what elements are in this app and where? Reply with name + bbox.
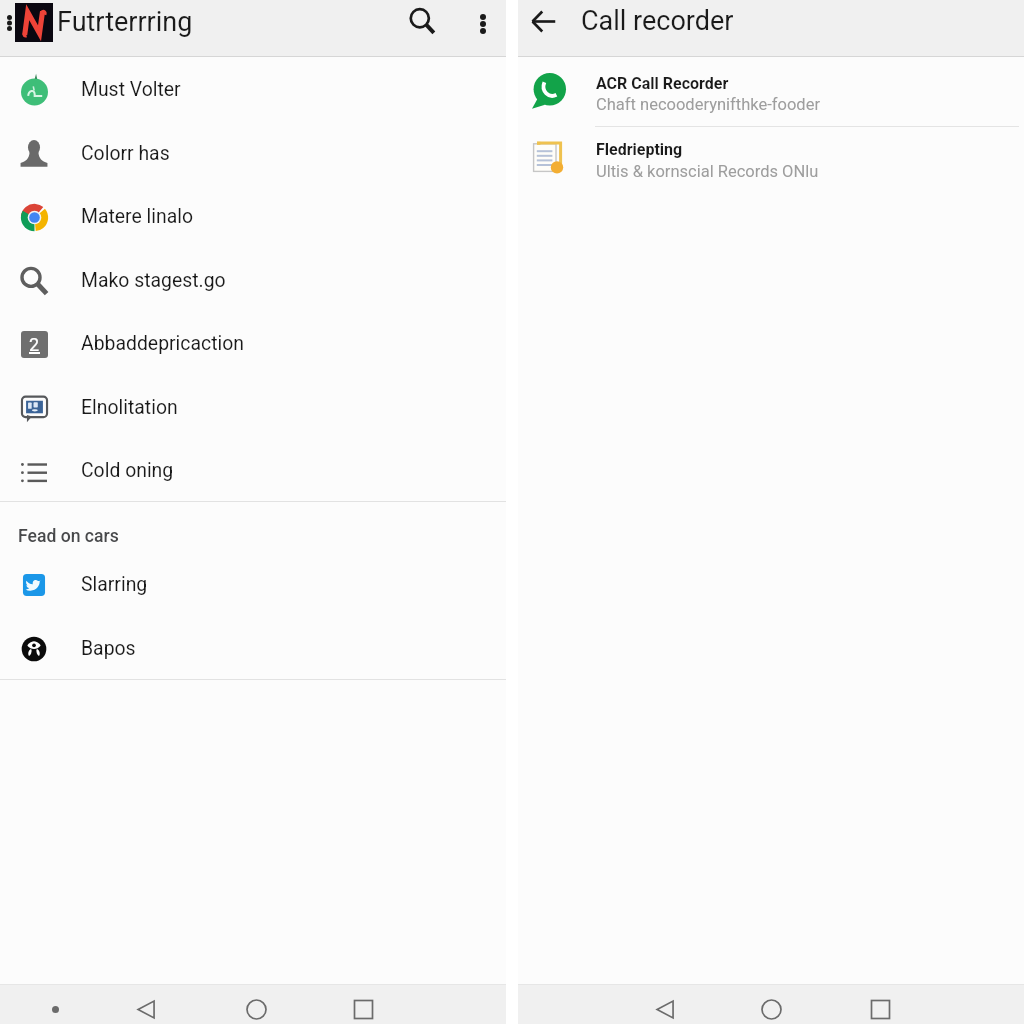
button[interactable]: Back <box>122 989 170 1024</box>
button[interactable]: Colorr has <box>0 122 506 185</box>
staticText: Slarring <box>81 573 148 596</box>
staticText: Mako stagest.go <box>81 269 226 292</box>
staticText: Futrterrring <box>57 6 193 38</box>
button[interactable]: ACR Call Recorder <box>518 54 1024 120</box>
staticText: Matere linalo <box>81 205 194 228</box>
button[interactable]: Matere linalo <box>0 185 506 248</box>
button[interactable]: Home <box>232 989 280 1024</box>
button[interactable]: Elnolitation <box>0 376 506 439</box>
button[interactable]: More options <box>459 0 507 48</box>
staticText: 2 <box>29 334 40 355</box>
button[interactable]: Bapos <box>0 617 506 680</box>
button[interactable]: Mako stagest.go <box>0 249 506 312</box>
staticText: Elnolitation <box>81 396 178 419</box>
staticText: Ultis & kornscial Records ONlu <box>596 162 819 181</box>
staticText: Abbaddepricaction <box>81 332 244 355</box>
button[interactable]: Recents <box>856 989 904 1024</box>
button[interactable]: Navigation menu <box>0 5 18 41</box>
button[interactable]: Slarring <box>0 553 506 616</box>
button[interactable]: Recents <box>339 989 387 1024</box>
button[interactable]: 2 <box>0 312 506 375</box>
staticText: ACR Call Recorder <box>596 74 729 93</box>
button[interactable]: Cold oning <box>0 439 506 502</box>
staticText: Call recorder <box>581 5 734 37</box>
staticText: Chaft necooderynifthke-fooder <box>596 95 821 114</box>
staticText: Fledriepting <box>596 140 683 159</box>
staticText: Bapos <box>81 637 136 660</box>
button[interactable]: Back <box>519 0 567 45</box>
staticText: Cold oning <box>81 459 174 482</box>
button[interactable]: Home <box>747 989 795 1024</box>
button[interactable]: Back <box>641 989 689 1024</box>
button[interactable]: Must Volter <box>0 58 506 121</box>
button[interactable]: Search <box>398 0 446 45</box>
staticText: Must Volter <box>81 78 181 101</box>
staticText: Fead on cars <box>18 526 119 547</box>
button[interactable]: Fledriepting <box>518 120 1024 186</box>
staticText: Colorr has <box>81 142 170 165</box>
